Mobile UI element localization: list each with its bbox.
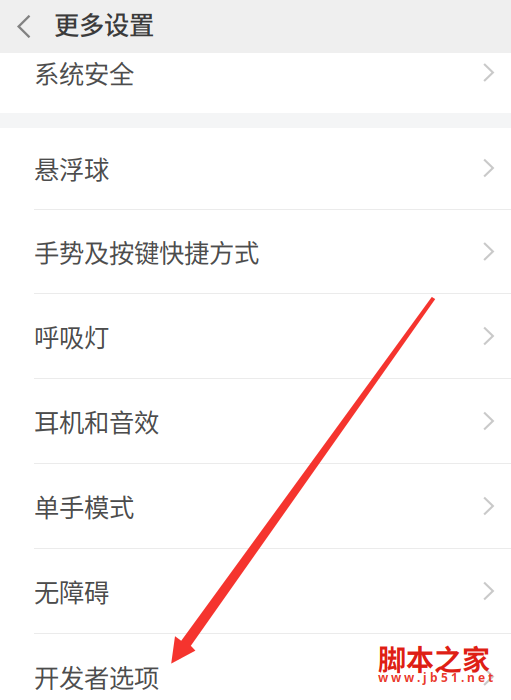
button[interactable]: 返回 <box>0 0 48 53</box>
staticText: 系统安全 <box>34 54 134 91</box>
button[interactable]: 悬浮球 <box>0 127 511 209</box>
staticText: 呼吸灯 <box>34 318 109 354</box>
button[interactable]: 开发者选项 <box>0 634 511 700</box>
staticText: 手势及按键快捷方式 <box>34 233 259 270</box>
button[interactable]: 手势及按键快捷方式 <box>0 210 511 293</box>
staticText: w w w . j b 5 1 . n e t <box>378 669 493 685</box>
button[interactable]: 呼吸灯 <box>0 294 511 378</box>
staticText: 开发者选项 <box>34 658 159 695</box>
button[interactable]: 系统安全 <box>0 32 511 113</box>
button[interactable]: 单手模式 <box>0 464 511 548</box>
staticText: 脚本之家 <box>378 638 490 678</box>
staticText: 更多设置 <box>54 5 154 42</box>
staticText: 悬浮球 <box>34 150 109 186</box>
button[interactable]: 耳机和音效 <box>0 379 511 463</box>
staticText: 无障碍 <box>34 573 109 609</box>
staticText: 耳机和音效 <box>34 403 159 439</box>
staticText: 单手模式 <box>34 488 134 524</box>
button[interactable]: 无障碍 <box>0 549 511 633</box>
